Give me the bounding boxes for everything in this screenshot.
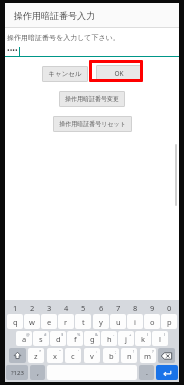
button[interactable]: y [93, 314, 109, 329]
staticText: f [74, 334, 77, 344]
button[interactable]: * [28, 348, 44, 363]
staticText: e [47, 317, 52, 327]
button[interactable]: 9 [144, 302, 160, 313]
button[interactable]: & [84, 331, 100, 346]
button[interactable]: 2 [24, 302, 40, 313]
button[interactable]: , [30, 365, 45, 380]
staticText: 8 [133, 303, 138, 313]
staticText: 6 [99, 303, 104, 313]
staticText: # [44, 332, 47, 337]
staticText: 7 [116, 303, 121, 313]
staticText: o [150, 317, 155, 327]
staticText: 操作用暗証番号変更 [65, 95, 119, 103]
button[interactable]: ( [135, 331, 151, 346]
staticText: 操作用暗証番号を入力して下さい。 [7, 33, 120, 42]
button[interactable]: e [41, 314, 57, 329]
staticText: 5 [81, 303, 86, 313]
staticText: ' [78, 349, 79, 354]
button[interactable]: - [101, 331, 117, 346]
button[interactable]: r [58, 314, 74, 329]
button[interactable]: Shift [9, 348, 26, 363]
staticText: @ [26, 332, 30, 337]
staticText: ; [115, 349, 117, 354]
staticText: w [29, 317, 35, 327]
staticText: q [13, 317, 18, 327]
staticText: m [144, 351, 152, 361]
staticText: + [129, 332, 132, 337]
staticText: n [127, 351, 132, 361]
button[interactable]: Backspace [158, 348, 175, 363]
button[interactable]: # [33, 331, 49, 346]
staticText: ? [152, 349, 154, 354]
button[interactable]: . [139, 365, 154, 380]
staticText: ?123 [11, 369, 24, 377]
button[interactable]: OK [96, 65, 142, 82]
staticText: 3 [47, 303, 52, 313]
staticText: x [53, 351, 57, 361]
staticText: l [159, 334, 161, 344]
button[interactable]: キャンセル [42, 66, 88, 82]
staticText: OK [114, 69, 124, 78]
button[interactable]: u [110, 314, 126, 329]
staticText: z [34, 351, 38, 361]
button[interactable]: p [161, 314, 177, 329]
button[interactable]: 操作用暗証番号変更 [59, 91, 125, 107]
staticText: i [134, 317, 136, 327]
button[interactable]: $ [50, 331, 66, 346]
button[interactable]: ' [65, 348, 81, 363]
button[interactable]: 3 [41, 302, 57, 313]
button[interactable]: % [67, 331, 83, 346]
button[interactable]: ?123 [6, 365, 28, 380]
staticText: k [141, 334, 146, 344]
button[interactable]: 操作用暗証番号リセット [53, 116, 132, 132]
staticText: ( [147, 332, 149, 337]
button[interactable]: 5 [75, 302, 91, 313]
staticText: 4 [64, 303, 69, 313]
staticText: 1 [13, 303, 18, 313]
staticText: ! [133, 349, 135, 354]
staticText: . [146, 368, 148, 378]
button[interactable]: w [24, 314, 40, 329]
staticText: u [116, 317, 121, 327]
button[interactable]: 7 [110, 302, 126, 313]
staticText: % [77, 332, 81, 337]
button[interactable]: + [118, 331, 134, 346]
staticText: - [113, 332, 115, 337]
staticText: キャンセル [48, 70, 82, 78]
staticText: r [64, 317, 68, 327]
button[interactable]: 8 [127, 302, 143, 313]
button[interactable]: t [75, 314, 91, 329]
button[interactable]: 0 [161, 302, 177, 313]
button[interactable]: 1 [7, 302, 23, 313]
button[interactable]: ? [140, 348, 156, 363]
staticText: 操作用暗証番号リセット [59, 120, 126, 128]
staticText: & [95, 332, 98, 337]
staticText: d [56, 334, 61, 344]
button[interactable]: " [47, 348, 63, 363]
staticText: s [39, 334, 43, 344]
button[interactable]: q [7, 314, 23, 329]
button[interactable]: ! [121, 348, 137, 363]
button[interactable]: 4 [58, 302, 74, 313]
staticText: b [109, 351, 114, 361]
button[interactable]: i [127, 314, 143, 329]
staticText: v [90, 351, 94, 361]
button[interactable]: @ [16, 331, 32, 346]
staticText: t [82, 317, 85, 327]
staticText: 9 [150, 303, 155, 313]
button[interactable]: ) [152, 331, 168, 346]
button[interactable]: Enter [156, 365, 178, 380]
button[interactable]: 6 [93, 302, 109, 313]
staticText: , [37, 368, 39, 378]
button[interactable]: ; [103, 348, 119, 363]
staticText: j [125, 334, 127, 344]
staticText: y [99, 317, 103, 327]
staticText: " [59, 349, 61, 354]
button[interactable]: o [144, 314, 160, 329]
staticText: c [71, 351, 75, 361]
button[interactable]: : [84, 348, 100, 363]
staticText: $ [61, 332, 64, 337]
staticText: : [96, 349, 98, 354]
staticText: 0 [167, 303, 172, 313]
